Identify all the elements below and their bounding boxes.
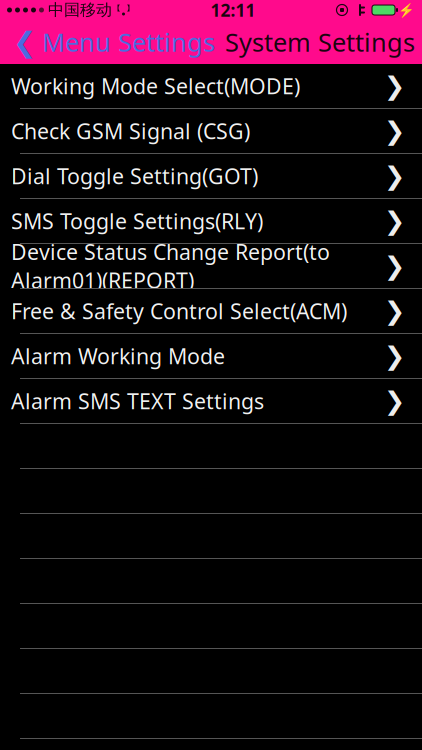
staticText: ❯: [384, 252, 405, 280]
staticText: ❯: [384, 297, 405, 325]
button[interactable]: [0, 559, 422, 604]
button[interactable]: Working Mode Select(MODE): [0, 64, 422, 109]
staticText: ❯: [384, 162, 405, 190]
button[interactable]: [0, 469, 422, 514]
staticText: Dial Toggle Setting(GOT): [11, 162, 258, 190]
button[interactable]: [0, 514, 422, 559]
button[interactable]: Alarm Working Mode: [0, 334, 422, 379]
staticText: Free & Safety Control Select(ACM): [11, 297, 347, 325]
button[interactable]: Device Status Change Report(to Alarm01)(…: [0, 244, 422, 289]
staticText: Device Status Change Report(to Alarm01)(…: [11, 238, 330, 294]
staticText: ❯: [384, 72, 405, 100]
staticText: SMS Toggle Settings(RLY): [11, 207, 263, 235]
staticText: System Settings: [225, 25, 415, 59]
staticText: ⚡: [398, 2, 415, 18]
button[interactable]: [0, 424, 422, 469]
staticText: Alarm SMS TEXT Settings: [11, 387, 264, 415]
button[interactable]: [0, 604, 422, 649]
button[interactable]: Check GSM Signal (CSG): [0, 109, 422, 154]
staticText: Menu Settings: [42, 25, 215, 59]
button[interactable]: Dial Toggle Setting(GOT): [0, 154, 422, 199]
button[interactable]: [0, 694, 422, 739]
button[interactable]: ❮: [0, 20, 217, 64]
staticText: Alarm Working Mode: [11, 342, 225, 370]
staticText: Check GSM Signal (CSG): [11, 117, 250, 145]
staticText: ❯: [384, 387, 405, 415]
button[interactable]: [0, 649, 422, 694]
staticText: ❮: [13, 26, 36, 58]
button[interactable]: Free & Safety Control Select(ACM): [0, 289, 422, 334]
staticText: 12:11: [210, 0, 255, 21]
button[interactable]: Alarm SMS TEXT Settings: [0, 379, 422, 424]
staticText: Working Mode Select(MODE): [11, 72, 300, 100]
staticText: ❯: [384, 117, 405, 145]
staticText: 中国移动: [48, 0, 112, 20]
button[interactable]: SMS Toggle Settings(RLY): [0, 199, 422, 244]
staticText: ❯: [384, 342, 405, 370]
staticText: ❯: [384, 207, 405, 235]
